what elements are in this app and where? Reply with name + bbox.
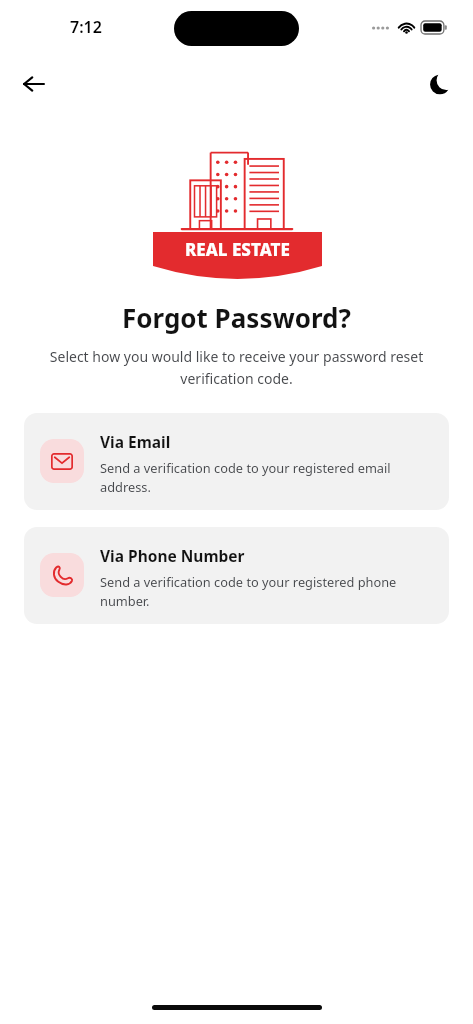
button[interactable]: Dark mode [419, 64, 459, 104]
other: Phone [40, 553, 84, 597]
staticText: Send a verification code to your registe… [100, 459, 433, 496]
other: Email [40, 439, 84, 483]
staticText: Forgot Password? [122, 300, 351, 335]
staticText: REAL ESTATE [185, 238, 290, 261]
staticText: Via Email [100, 431, 171, 452]
staticText: Via Phone Number [100, 545, 245, 566]
button[interactable]: Phone [24, 527, 449, 624]
button[interactable]: Back [14, 64, 54, 104]
staticText: Select how you would like to receive you… [36, 347, 437, 388]
staticText: 7:12 [70, 16, 102, 38]
button[interactable]: Email [24, 413, 449, 510]
staticText: Send a verification code to your registe… [100, 573, 433, 610]
